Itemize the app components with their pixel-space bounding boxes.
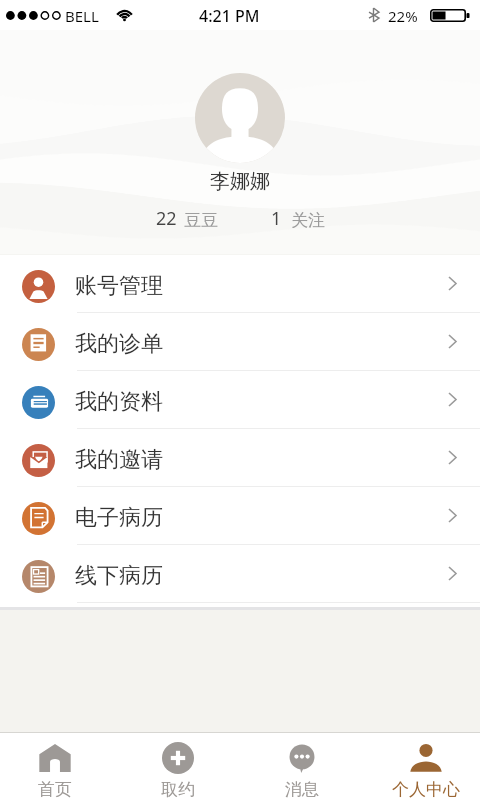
staticText: 电子病历 bbox=[75, 504, 163, 532]
staticText: 关注 bbox=[291, 210, 325, 231]
staticText: 22 bbox=[156, 206, 177, 231]
button[interactable]: 首页 bbox=[10, 733, 100, 800]
staticText: 首页 bbox=[38, 779, 72, 800]
staticText: 个人中心 bbox=[392, 779, 460, 800]
staticText: 1 bbox=[271, 206, 282, 231]
staticText: BELL bbox=[65, 6, 99, 26]
button[interactable]: 22 bbox=[156, 206, 218, 231]
button[interactable]: 个人中心 bbox=[381, 733, 471, 800]
button[interactable]: 消息 bbox=[257, 733, 347, 800]
staticText: 4:21 PM bbox=[199, 5, 260, 27]
button[interactable]: 1 bbox=[271, 206, 325, 231]
button[interactable]: 我的诊单 bbox=[0, 313, 480, 371]
staticText: 账号管理 bbox=[75, 272, 163, 300]
staticText: 22% bbox=[388, 6, 418, 26]
staticText: 消息 bbox=[285, 779, 319, 800]
staticText: 取约 bbox=[161, 779, 195, 800]
button[interactable]: 我的邀请 bbox=[0, 429, 480, 487]
button[interactable]: 线下病历 bbox=[0, 545, 480, 603]
staticText: 豆豆 bbox=[184, 210, 218, 231]
button[interactable]: 电子病历 bbox=[0, 487, 480, 545]
staticText: 线下病历 bbox=[75, 562, 163, 590]
staticText: 我的诊单 bbox=[75, 330, 163, 358]
button[interactable]: 我的资料 bbox=[0, 371, 480, 429]
button[interactable]: 取约 bbox=[133, 733, 223, 800]
button[interactable]: 账号管理 bbox=[0, 255, 480, 313]
button[interactable]: Avatar bbox=[195, 73, 285, 163]
staticText: 李娜娜 bbox=[210, 169, 270, 194]
staticText: 我的邀请 bbox=[75, 446, 163, 474]
staticText: 我的资料 bbox=[75, 388, 163, 416]
